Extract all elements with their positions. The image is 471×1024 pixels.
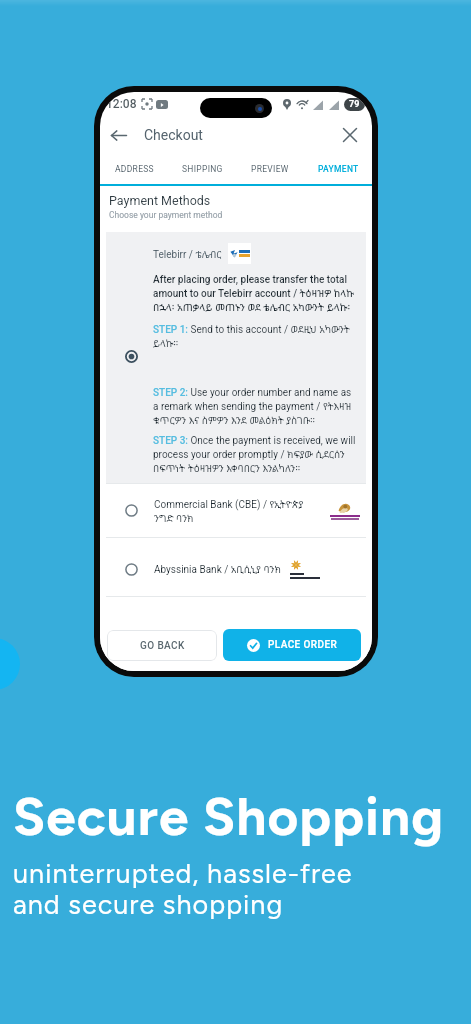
staticText: Checkout [144, 127, 203, 143]
staticText: Commercial Bank (CBE) / የኢትዮጵያ ንግድ ባንክ [154, 497, 304, 525]
button[interactable]: PLACE ORDER [223, 629, 361, 661]
button[interactable]: Close [336, 121, 364, 149]
button[interactable]: ADDRESS [100, 154, 168, 184]
staticText: 12:08 [106, 97, 137, 111]
staticText: Telebirr / ቴሌብር [153, 247, 222, 261]
staticText: PAYMENT [318, 164, 359, 174]
staticText: Choose your payment method [109, 210, 223, 220]
staticText: GO BACK [140, 640, 185, 652]
staticText: STEP 2: Use your order number and name a… [153, 387, 358, 427]
button[interactable]: Commercial Bank (CBE) / የኢትዮጵያ ንግድ ባንክ [100, 484, 372, 537]
button[interactable]: Abyssinia Bank / አቢሲኒያ ባንክ [100, 538, 372, 596]
staticText: PREVIEW [251, 164, 289, 174]
button[interactable]: SHIPPING [168, 154, 236, 184]
staticText: 79 [349, 99, 360, 110]
staticText: ADDRESS [115, 164, 154, 174]
button[interactable]: PREVIEW [236, 154, 304, 184]
button[interactable]: Back [104, 121, 132, 149]
staticText: After placing order, please transfer the… [153, 274, 358, 314]
staticText: Secure Shopping [13, 785, 445, 849]
button[interactable]: GO BACK [107, 630, 217, 661]
button[interactable]: PAYMENT [304, 154, 372, 184]
staticText: STEP 1: Send to this account / ወደዚህ አካውን… [153, 322, 358, 350]
staticText: SHIPPING [182, 164, 223, 174]
staticText: STEP 3: Once the payment is received, we… [153, 435, 358, 475]
staticText: PLACE ORDER [268, 639, 338, 651]
staticText: uninterrupted, hassle-free and secure sh… [13, 857, 353, 920]
staticText: Payment Methods [109, 193, 211, 208]
staticText: Abyssinia Bank / አቢሲኒያ ባንክ [154, 562, 281, 576]
